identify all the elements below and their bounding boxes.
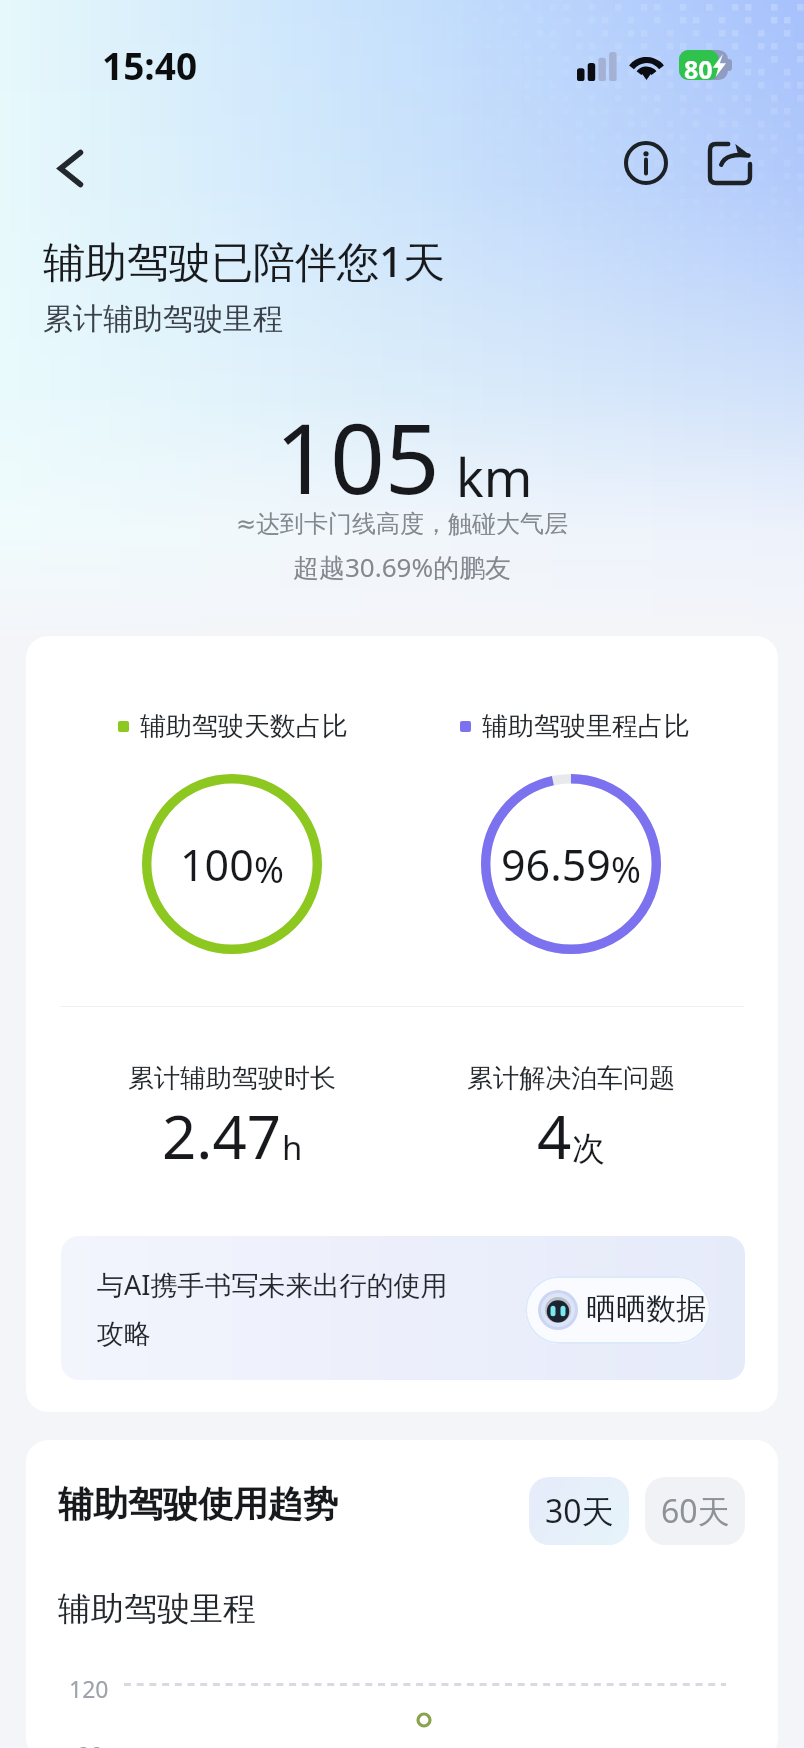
staticText: 辅助驾驶天数占比 (140, 710, 348, 743)
button[interactable]: Back (34, 132, 106, 204)
staticText: 2.47 (162, 1095, 282, 1177)
staticText: 105 (275, 391, 440, 522)
staticText: 60天 (661, 1489, 730, 1533)
staticText: 晒晒数据 (586, 1290, 706, 1328)
staticText: 累计解决泊车问题 (467, 1062, 675, 1095)
staticText: ≈达到卡门线高度，触碰大气层 (0, 509, 804, 539)
staticText: 辅助驾驶使用趋势 (58, 1482, 338, 1526)
staticText: 100 (180, 835, 254, 894)
staticText: 次 (572, 1128, 605, 1170)
staticText: 15:40 (102, 40, 198, 90)
staticText: 90 (77, 1739, 104, 1748)
staticText: 辅助驾驶里程占比 (482, 710, 690, 743)
staticText: 与AI携手书写未来出行的使用 攻略 (97, 1266, 448, 1351)
button[interactable]: Share (694, 127, 766, 199)
button[interactable]: Info (610, 127, 682, 199)
button[interactable]: 60天 (645, 1477, 745, 1545)
staticText: 96.59 (501, 835, 611, 894)
staticText: km (456, 441, 533, 512)
staticText: 80 (684, 52, 713, 82)
staticText: 辅助驾驶已陪伴您1天 (43, 232, 446, 289)
staticText: h (282, 1125, 303, 1170)
staticText: 累计辅助驾驶时长 (128, 1062, 336, 1095)
button[interactable]: 晒晒数据 (525, 1276, 711, 1344)
staticText: 120 (69, 1673, 109, 1704)
staticText: 累计辅助驾驶里程 (43, 300, 283, 338)
staticText: 4 (537, 1095, 572, 1177)
button[interactable]: 30天 (529, 1477, 629, 1545)
staticText: 超越30.69%的鹏友 (0, 549, 804, 585)
staticText: 30天 (545, 1489, 614, 1533)
staticText: % (611, 845, 641, 894)
staticText: % (254, 845, 284, 894)
staticText: 辅助驾驶里程 (58, 1588, 256, 1630)
